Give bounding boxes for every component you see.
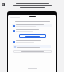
button[interactable] <box>13 45 51 48</box>
other: Field icon <box>13 30 15 32</box>
button[interactable]: Field icon <box>12 40 52 43</box>
button[interactable]: Field icon <box>12 24 52 27</box>
button[interactable]: Field icon <box>12 29 52 32</box>
button[interactable] <box>19 34 46 38</box>
other: Field icon <box>13 25 15 27</box>
button[interactable]: Logo <box>2 3 5 6</box>
other: Field icon <box>13 41 15 43</box>
button[interactable] <box>13 50 52 53</box>
